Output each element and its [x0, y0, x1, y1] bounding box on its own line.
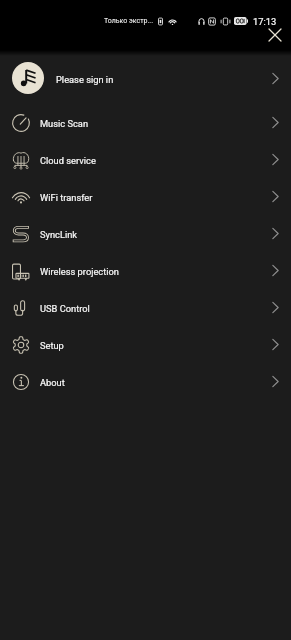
button[interactable]: SyncLink	[0, 215, 291, 252]
staticText: Только экстр...	[104, 17, 154, 25]
button[interactable]: WiFi transfer	[0, 178, 291, 215]
button[interactable]: Wireless projection	[0, 252, 291, 289]
button[interactable]: About	[0, 363, 291, 400]
staticText: Music Scan	[40, 118, 89, 129]
staticText: Please sign in	[56, 74, 114, 85]
button[interactable]: Music Scan	[0, 104, 291, 141]
button[interactable]: Cloud service	[0, 141, 291, 178]
staticText: Cloud service	[40, 155, 96, 166]
button[interactable]: Please sign in	[0, 52, 291, 104]
button[interactable]: Setup	[0, 326, 291, 363]
staticText: About	[40, 377, 65, 388]
staticText: 17:13	[253, 16, 277, 27]
staticText: Setup	[40, 340, 64, 351]
button[interactable]: USB Control	[0, 289, 291, 326]
staticText: SyncLink	[40, 229, 78, 240]
staticText: WiFi transfer	[40, 192, 93, 203]
staticText: Wireless projection	[40, 266, 119, 277]
button[interactable]: Close	[263, 23, 287, 47]
staticText: USB Control	[40, 303, 90, 314]
